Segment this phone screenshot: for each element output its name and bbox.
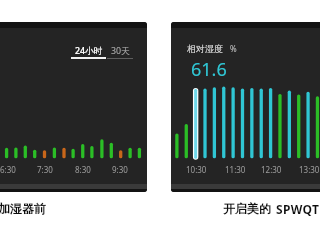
staticText: 8:30 <box>75 164 91 175</box>
staticText: SPWQT <box>276 201 320 217</box>
staticText: 30天 <box>111 45 130 57</box>
staticText: 9:30 <box>112 164 128 175</box>
staticText: 开启美的 <box>223 201 271 216</box>
staticText: 11:30 <box>225 164 246 175</box>
staticText: 10:30 <box>186 164 207 175</box>
button[interactable]: 30天 <box>107 45 133 59</box>
staticText: 24小时 <box>75 45 103 57</box>
staticText: 开启加湿器前 <box>0 201 46 216</box>
staticText: 7:30 <box>37 164 53 175</box>
staticText: 61.6 <box>191 57 227 82</box>
staticText: 12:30 <box>261 164 282 175</box>
button[interactable]: 24小时 <box>71 45 106 59</box>
staticText: 6:30 <box>0 164 16 175</box>
staticText: 相对湿度 <box>187 43 223 54</box>
staticText: % <box>230 43 237 54</box>
staticText: 13:30 <box>299 164 320 175</box>
